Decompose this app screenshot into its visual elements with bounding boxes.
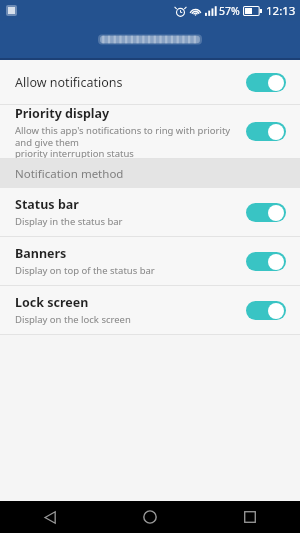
button[interactable]: Banners (0, 237, 300, 285)
staticText: Allow notifications (15, 74, 123, 91)
button[interactable]: Lock screen (0, 286, 300, 334)
staticText: Display on top of the status bar (15, 264, 155, 277)
staticText: Status bar (15, 196, 79, 213)
staticText: Banners (15, 245, 67, 262)
button[interactable]: Home (100, 501, 200, 533)
button[interactable]: Toggle on (246, 122, 286, 141)
button[interactable]: Recent apps (200, 501, 300, 533)
staticText: 12:13 (266, 3, 296, 19)
button[interactable]: Toggle on (246, 301, 286, 320)
staticText: Priority display (15, 105, 110, 122)
button[interactable]: Status bar (0, 188, 300, 236)
button[interactable]: Allow notifications (0, 60, 300, 104)
button[interactable]: Priority display (0, 105, 300, 158)
button[interactable]: Toggle on (246, 73, 286, 92)
staticText: Display in the status bar (15, 215, 123, 228)
button[interactable]: Back (0, 501, 100, 533)
staticText: 57% (219, 4, 240, 18)
staticText: Lock screen (15, 294, 89, 311)
staticText: Display on the lock screen (15, 313, 131, 326)
staticText: Allow this app's notifications to ring w… (15, 124, 238, 158)
button[interactable]: Toggle on (246, 203, 286, 222)
staticText: Notification method (15, 166, 124, 182)
button[interactable]: Toggle on (246, 252, 286, 271)
